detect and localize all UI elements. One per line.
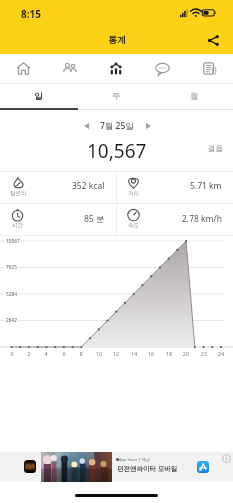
staticText: 24 — [217, 350, 225, 357]
button[interactable]: Open in App Store — [197, 461, 209, 473]
button[interactable]: 주 — [77, 84, 155, 110]
staticText: 12 — [112, 350, 120, 357]
staticText: 통계 — [108, 34, 126, 45]
button[interactable]: Friends — [46, 54, 92, 83]
staticText: 주 — [112, 91, 121, 102]
staticText: 85 분 — [84, 213, 105, 225]
staticText: 18 — [165, 350, 173, 357]
staticText: 걸음 — [208, 144, 223, 153]
staticText: 8:15 — [21, 7, 41, 21]
button[interactable]: 시간 — [0, 203, 116, 236]
staticText: 7월 25일 — [100, 120, 134, 132]
button[interactable]: Share — [203, 30, 224, 51]
staticText: 16 — [147, 350, 155, 357]
button[interactable]: Statistics — [92, 54, 139, 83]
staticText: 던전앤파이터 모바일 — [117, 464, 178, 473]
button[interactable]: 속도 — [116, 203, 233, 236]
staticText: 10 — [95, 350, 103, 357]
staticText: 2 — [25, 350, 33, 357]
button[interactable]: More — [186, 54, 233, 83]
staticText: 7925 — [6, 264, 17, 271]
staticText: 일 — [34, 91, 43, 102]
staticText: 6 — [60, 350, 68, 357]
staticText: App Store 1 액션 — [119, 457, 150, 462]
button[interactable]: Chat — [139, 54, 186, 83]
button[interactable]: 거리 — [116, 171, 233, 203]
button[interactable]: Home — [0, 54, 46, 83]
staticText: 2.78 km/h — [182, 213, 222, 225]
staticText: 8 — [77, 350, 85, 357]
button[interactable]: Next day — [140, 118, 156, 134]
staticText: 5284 — [6, 291, 17, 298]
button[interactable]: 월 — [155, 84, 233, 110]
button[interactable]: 칼로리 — [0, 171, 116, 203]
staticText: 칼로리 — [10, 190, 27, 197]
staticText: 352 kcal — [72, 180, 105, 192]
staticText: 0 — [8, 350, 16, 357]
staticText: 14 — [130, 350, 138, 357]
staticText: 2642 — [6, 317, 17, 324]
staticText: 20 — [182, 350, 190, 357]
button[interactable]: Previous day — [78, 118, 94, 134]
staticText: 10567 — [6, 238, 20, 245]
staticText: 거리 — [128, 190, 139, 197]
staticText: 22 — [200, 350, 208, 357]
staticText: 월 — [190, 91, 199, 102]
staticText: 5.71 km — [190, 180, 222, 192]
staticText: 속도 — [128, 222, 139, 229]
staticText: 시간 — [12, 222, 23, 229]
staticText: 10,567 — [87, 138, 147, 164]
staticText: 4 — [42, 350, 50, 357]
button[interactable]: 일 — [0, 84, 77, 110]
button[interactable]: Ad information — [222, 454, 231, 463]
